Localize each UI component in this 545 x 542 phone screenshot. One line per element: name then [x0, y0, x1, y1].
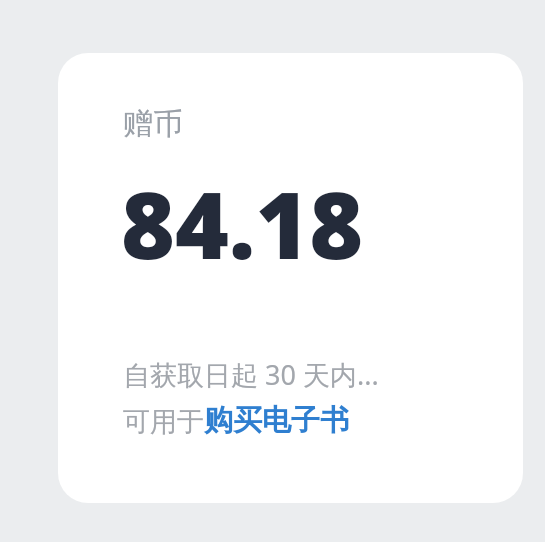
staticText: 购买电子书: [204, 402, 349, 439]
button[interactable]: 购买电子书: [204, 402, 349, 439]
staticText: 自获取日起 30 天内...: [123, 356, 379, 393]
staticText: 可用于: [123, 405, 204, 439]
button[interactable]: 赠币: [58, 53, 523, 503]
staticText: 赠币: [123, 105, 183, 143]
staticText: 84.18: [121, 161, 364, 286]
